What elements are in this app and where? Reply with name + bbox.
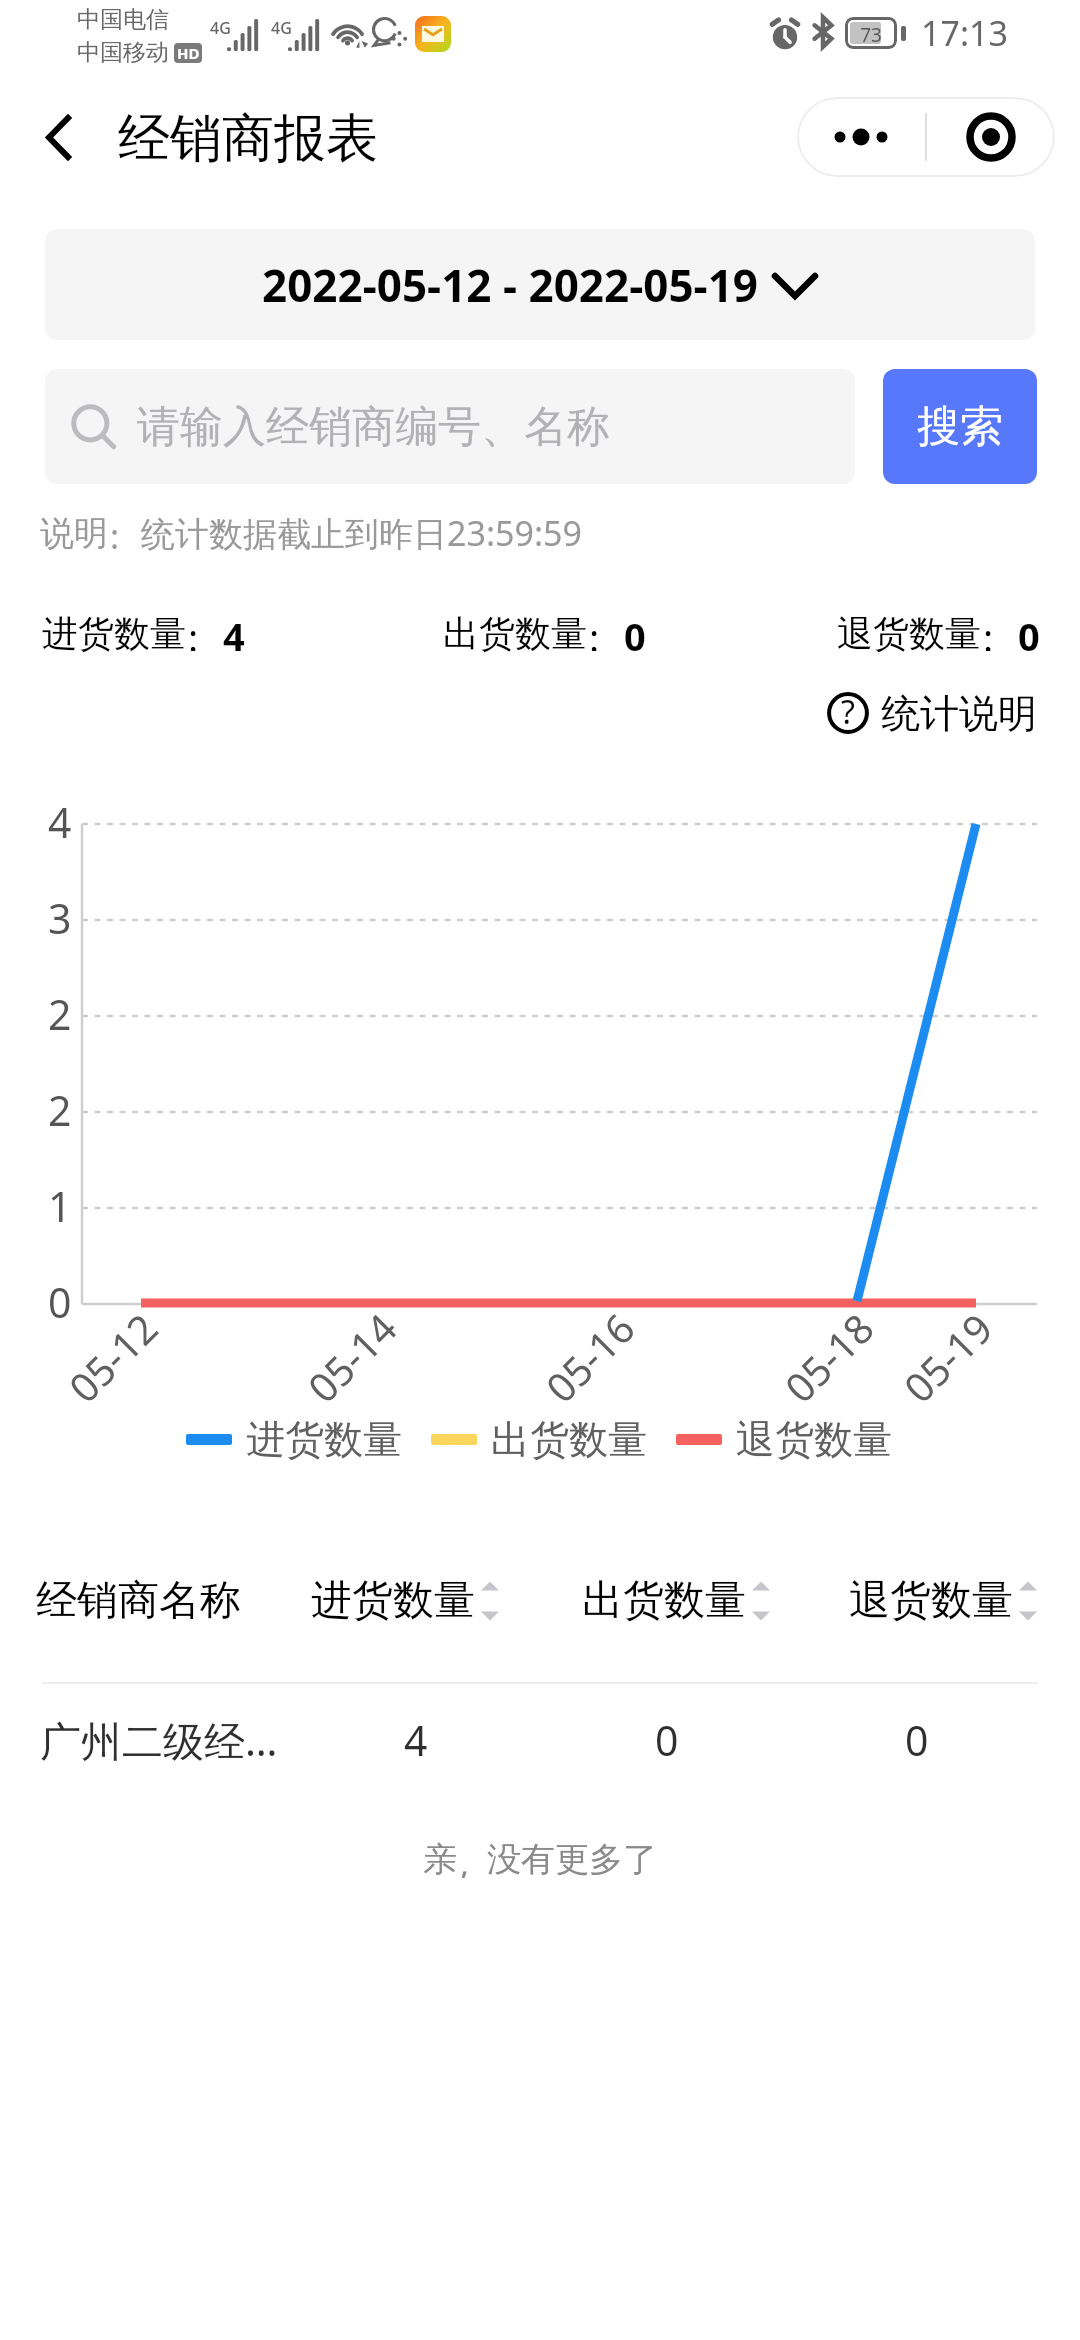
staticText: : xyxy=(983,611,994,651)
staticText: 4 xyxy=(223,610,245,656)
button[interactable]: 搜索 xyxy=(883,369,1037,484)
staticText: 中国电信 xyxy=(77,5,169,34)
button[interactable]: 2022-05-12 - 2022-05-19 xyxy=(45,229,1035,340)
staticText: 经销商报表 xyxy=(118,106,378,172)
staticText: 05-14 xyxy=(295,1301,408,1413)
staticText: 1 xyxy=(48,1178,72,1228)
staticText: 0 xyxy=(655,1712,679,1768)
staticText: 进货数量 xyxy=(42,611,186,656)
staticText: : xyxy=(110,513,120,549)
staticText: 说明 xyxy=(40,512,108,555)
button[interactable]: 出货数量 xyxy=(582,1575,770,1627)
staticText: 73 xyxy=(850,22,892,44)
button[interactable]: 退货数量 xyxy=(849,1575,1037,1627)
staticText: : xyxy=(589,611,600,651)
staticText: 退货数量 xyxy=(849,1575,1013,1627)
staticText: 05-18 xyxy=(772,1301,885,1413)
staticText: 退货数量 xyxy=(736,1415,892,1464)
staticText: 出货数量 xyxy=(491,1415,647,1464)
staticText: : xyxy=(188,611,199,651)
staticText: 05-12 xyxy=(56,1301,169,1413)
staticText: 广州二级经… xyxy=(40,1712,278,1768)
staticText: 0 xyxy=(48,1274,72,1324)
staticText: 05-19 xyxy=(891,1301,1004,1413)
staticText: 退货数量 xyxy=(837,611,981,656)
button[interactable]: ? xyxy=(826,689,1037,737)
staticText: 2022-05-12 - 2022-05-19 xyxy=(262,255,758,315)
staticText: 出货数量 xyxy=(582,1575,746,1627)
button[interactable]: 关闭 xyxy=(927,97,1055,177)
staticText: 经销商名称 xyxy=(36,1575,241,1627)
button[interactable]: 请输入经销商编号、名称 xyxy=(45,369,855,484)
staticText: 4G xyxy=(271,17,292,39)
staticText: 没有更多了 xyxy=(487,1838,657,1881)
staticText: 中国移动 xyxy=(77,38,169,67)
staticText: , xyxy=(460,1840,470,1878)
staticText: 0 xyxy=(624,610,646,656)
staticText: 统计说明 xyxy=(881,689,1037,737)
button[interactable]: 更多 xyxy=(797,97,925,177)
button[interactable]: 进货数量 xyxy=(311,1575,499,1627)
staticText: 0 xyxy=(1018,610,1040,656)
staticText: 搜索 xyxy=(917,400,1003,454)
staticText: 进货数量 xyxy=(246,1415,402,1464)
staticText: 2 xyxy=(48,1082,72,1132)
staticText: 17:13 xyxy=(921,10,1008,56)
staticText: 4 xyxy=(404,1712,428,1768)
button[interactable]: 广州二级经… xyxy=(0,1690,1080,1790)
staticText: 2 xyxy=(48,986,72,1036)
staticText: 出货数量 xyxy=(443,611,587,656)
button[interactable]: 返回 xyxy=(23,102,93,172)
staticText: 请输入经销商编号、名称 xyxy=(137,400,610,454)
staticText: HD xyxy=(177,43,200,63)
staticText: 4G xyxy=(210,17,231,39)
staticText: 统计数据截止到昨日23:59:59 xyxy=(141,510,582,556)
staticText: 4 xyxy=(48,794,72,844)
staticText: 0 xyxy=(905,1712,929,1768)
staticText: 05-16 xyxy=(533,1301,646,1413)
staticText: ? xyxy=(841,690,855,734)
staticText: 3 xyxy=(48,890,72,940)
staticText: 亲 xyxy=(423,1838,457,1881)
staticText: 进货数量 xyxy=(311,1575,475,1627)
